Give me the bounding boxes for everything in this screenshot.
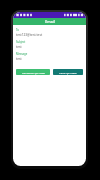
staticText: SEND QR CODE — [59, 71, 77, 74]
staticText: GENERATE QR CODE — [22, 71, 45, 74]
button[interactable]: GENERATE QR CODE — [16, 69, 50, 75]
button[interactable]: Subject — [16, 40, 83, 50]
staticText: test — [16, 45, 22, 49]
staticText: Subject — [16, 40, 26, 44]
staticText: To — [16, 28, 19, 32]
button[interactable]: SEND QR CODE — [53, 69, 83, 75]
staticText: Message — [16, 52, 28, 56]
staticText: Email — [45, 19, 55, 24]
staticText: test — [16, 57, 22, 61]
staticText: test123@test.test — [16, 33, 43, 37]
button[interactable]: To — [16, 28, 83, 38]
button[interactable]: Message — [16, 52, 83, 62]
